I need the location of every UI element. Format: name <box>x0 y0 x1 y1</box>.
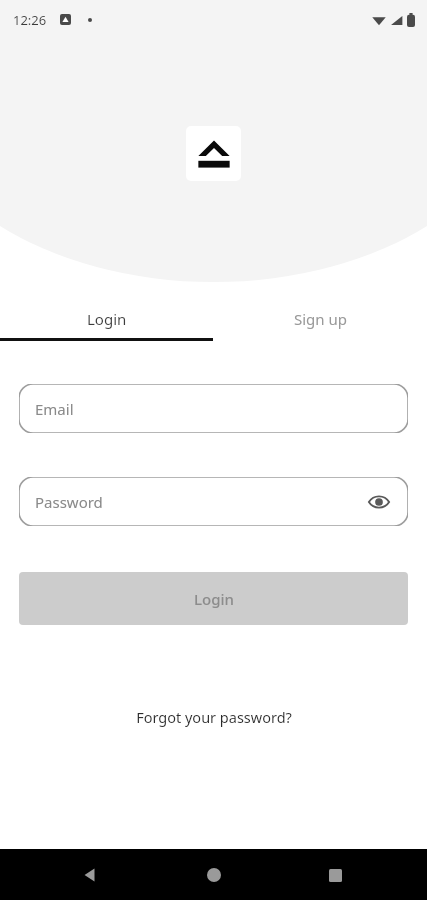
button[interactable]: Recent apps <box>311 851 359 899</box>
staticText: Email <box>35 399 74 419</box>
staticText: Sign up <box>294 309 347 329</box>
staticText: Login <box>87 309 127 329</box>
button[interactable]: Forgot your password? <box>0 698 427 736</box>
button[interactable]: Back <box>66 851 114 899</box>
staticText: 12:26 <box>13 11 47 29</box>
button[interactable]: Password <box>19 477 408 526</box>
button[interactable]: Login <box>19 572 408 625</box>
staticText: Login <box>194 589 234 609</box>
button[interactable]: Email <box>19 384 408 433</box>
staticText: Forgot your password? <box>136 707 292 727</box>
button[interactable]: Home <box>190 851 238 899</box>
button[interactable]: Show password <box>364 487 394 517</box>
button[interactable]: Sign up <box>213 296 427 341</box>
staticText: Password <box>35 492 103 512</box>
button[interactable]: Login <box>0 296 213 341</box>
